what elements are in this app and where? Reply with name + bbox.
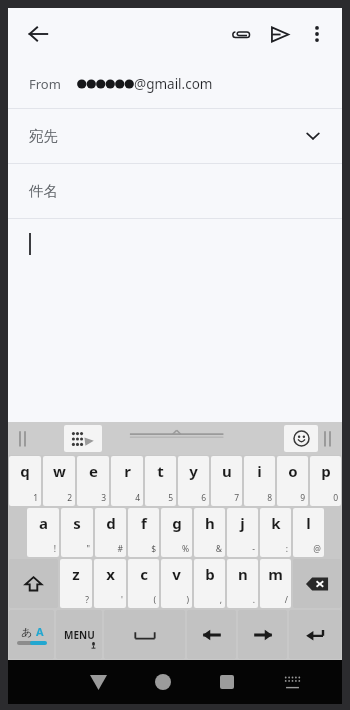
staticText: 4 [135, 492, 140, 504]
staticText: - [252, 543, 255, 555]
staticText: 件名 [29, 182, 58, 200]
button[interactable]: f [128, 508, 159, 557]
staticText: @ [313, 543, 321, 555]
button[interactable]: Keyboard layout [64, 425, 102, 452]
button[interactable]: Back [18, 14, 58, 54]
button[interactable]: c [128, 559, 159, 608]
staticText: f [141, 513, 147, 533]
button[interactable]: From [8, 60, 342, 108]
button[interactable]: t [145, 456, 176, 506]
staticText: & [215, 543, 222, 555]
staticText: w [53, 461, 66, 481]
button[interactable]: a [27, 508, 59, 557]
staticText: p [321, 461, 331, 481]
staticText: r [124, 461, 131, 481]
staticText: , [219, 594, 222, 606]
button[interactable]: Expand recipients [300, 123, 326, 149]
button[interactable]: Shift [9, 559, 58, 608]
button[interactable]: n [227, 559, 258, 608]
staticText: A [36, 624, 44, 639]
staticText: u [222, 461, 232, 481]
button[interactable]: v [161, 559, 192, 608]
button[interactable]: x [94, 559, 126, 608]
button[interactable]: Delete [293, 559, 341, 608]
staticText: 7 [234, 492, 239, 504]
staticText: l [306, 513, 311, 533]
staticText: 6 [201, 492, 206, 504]
button[interactable]: d [95, 508, 126, 557]
button[interactable]: Send [260, 15, 298, 53]
button[interactable]: Move left [187, 610, 236, 659]
button[interactable]: More options [298, 15, 336, 53]
button[interactable]: o [277, 456, 308, 506]
staticText: y [189, 461, 198, 481]
button[interactable]: Recents [207, 662, 247, 702]
button[interactable]: m [260, 559, 291, 608]
staticText: 8 [267, 492, 272, 504]
staticText: 宛先 [29, 127, 58, 145]
staticText: 9 [300, 492, 305, 504]
staticText: / [284, 594, 288, 606]
staticText: ' [121, 594, 123, 606]
staticText: q [20, 461, 30, 481]
button[interactable]: 件名 [8, 164, 342, 218]
staticText: ? [85, 594, 89, 606]
staticText: h [205, 513, 215, 533]
button[interactable]: Switch input language [9, 610, 54, 659]
staticText: x [106, 564, 115, 584]
button[interactable]: u [211, 456, 242, 506]
button[interactable]: Back [78, 662, 118, 702]
button[interactable]: y [178, 456, 209, 506]
button[interactable] [8, 219, 342, 422]
staticText: m [268, 564, 283, 584]
button[interactable]: z [60, 559, 92, 608]
button[interactable]: Move right [238, 610, 287, 659]
staticText: あ [21, 625, 33, 639]
button[interactable]: j [227, 508, 258, 557]
staticText: From [29, 75, 61, 93]
button[interactable]: Space [104, 610, 185, 659]
button[interactable]: r [111, 456, 143, 506]
staticText: : [285, 543, 288, 555]
staticText: . [252, 594, 255, 606]
button[interactable]: s [61, 508, 93, 557]
staticText: a [39, 513, 48, 533]
staticText: c [140, 564, 148, 584]
button[interactable]: Menu [56, 610, 102, 659]
button[interactable]: l [293, 508, 324, 557]
staticText: 2 [67, 492, 72, 504]
button[interactable]: Hide keyboard [272, 662, 312, 702]
button[interactable]: Emoji [284, 425, 318, 452]
staticText: @gmail.com [134, 75, 213, 93]
staticText: b [205, 564, 215, 584]
staticText: k [271, 513, 281, 533]
button[interactable]: e [77, 456, 109, 506]
button[interactable]: 宛先 [8, 109, 342, 163]
button[interactable]: p [310, 456, 341, 506]
staticText: j [240, 513, 245, 533]
staticText: ! [53, 543, 56, 555]
button[interactable]: w [43, 456, 75, 506]
staticText: e [89, 461, 98, 481]
staticText: " [86, 543, 90, 555]
button[interactable]: i [244, 456, 275, 506]
button[interactable]: Attach file [222, 15, 260, 53]
staticText: v [172, 564, 181, 584]
staticText: n [238, 564, 248, 584]
staticText: # [117, 543, 123, 555]
staticText: 1 [33, 492, 38, 504]
staticText: % [181, 543, 189, 555]
button[interactable]: b [194, 559, 225, 608]
button[interactable]: k [260, 508, 291, 557]
button[interactable]: q [9, 456, 41, 506]
button[interactable]: Enter [289, 610, 341, 659]
staticText: t [157, 461, 164, 481]
staticText: 3 [101, 492, 106, 504]
button[interactable]: Home [143, 662, 183, 702]
staticText: g [172, 513, 182, 533]
staticText: ( [153, 594, 156, 606]
button[interactable]: g [161, 508, 192, 557]
staticText: s [73, 513, 81, 533]
staticText: ) [186, 594, 189, 606]
button[interactable]: h [194, 508, 225, 557]
